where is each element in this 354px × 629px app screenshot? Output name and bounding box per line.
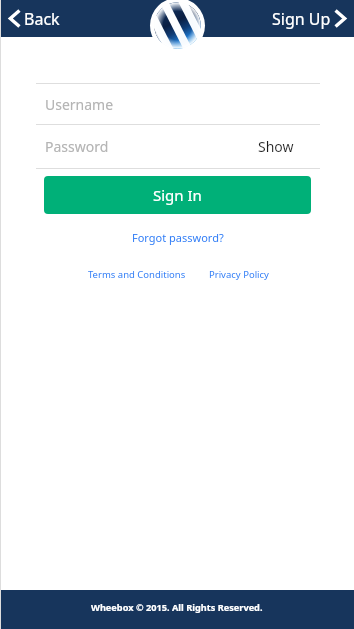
button[interactable]: Sign In [44,176,311,214]
button[interactable]: Forgot password? [130,228,226,247]
staticText: Back [24,8,60,30]
button[interactable]: Sign Up [262,0,354,37]
staticText: Show [258,137,294,156]
button[interactable]: Password [36,125,109,168]
button[interactable]: Username [36,84,320,124]
button[interactable]: Show [248,125,320,168]
staticText: Forgot password? [132,230,224,245]
button[interactable]: Terms and Conditions [86,266,188,283]
staticText: Sign Up [272,8,331,30]
staticText: Password [45,137,109,156]
staticText: Sign In [153,185,202,205]
staticText: Terms and Conditions [88,268,186,281]
staticText: Wheebox © 2015. All Rights Reserved. [91,601,263,614]
staticText: Username [45,95,114,114]
button[interactable]: Back [0,0,70,37]
button[interactable]: Privacy Policy [207,266,271,283]
staticText: Privacy Policy [209,268,269,281]
